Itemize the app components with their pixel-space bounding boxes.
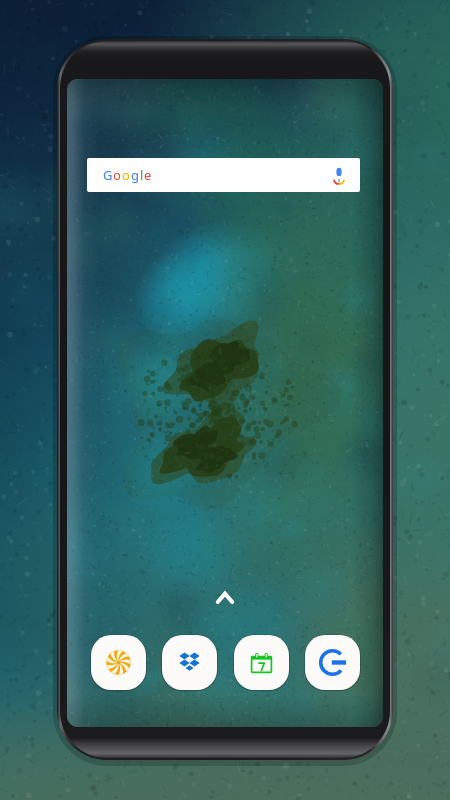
staticText: G <box>103 166 113 184</box>
staticText: e <box>144 166 152 184</box>
staticText: g <box>131 166 140 184</box>
button[interactable]: G <box>87 158 360 192</box>
staticText: o <box>113 166 122 184</box>
button[interactable]: Calendar <box>234 635 289 690</box>
button[interactable]: Dropbox <box>162 635 217 690</box>
button[interactable]: Google <box>305 635 360 690</box>
button[interactable]: Open app drawer <box>209 584 241 610</box>
button[interactable]: Candy Crush <box>91 635 146 690</box>
staticText: o <box>122 166 131 184</box>
staticText: l <box>140 166 144 184</box>
